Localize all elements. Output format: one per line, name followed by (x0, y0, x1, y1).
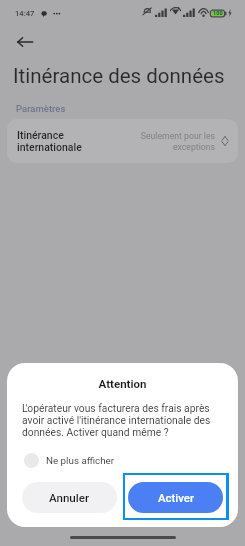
staticText: Activer (158, 491, 194, 504)
button[interactable]: Ne plus afficher (24, 450, 115, 471)
button[interactable]: Back (9, 28, 41, 55)
staticText: Annuler (49, 491, 90, 505)
button[interactable]: Activer (128, 482, 223, 513)
staticText: Paramètres (16, 103, 66, 114)
button[interactable]: Annuler (22, 482, 117, 513)
staticText: L'opérateur vous facturera des frais apr… (22, 402, 218, 438)
staticText: Ne plus afficher (46, 455, 115, 466)
staticText: Attention (7, 377, 238, 390)
staticText: 14:47 (15, 9, 35, 18)
staticText: Itinérance des données (13, 64, 225, 88)
staticText: Seulement pour les exceptions (140, 131, 215, 152)
staticText: Itinérance internationale (17, 129, 82, 153)
staticText: 100 (213, 10, 223, 17)
button[interactable]: Itinérance internationale (7, 119, 238, 163)
